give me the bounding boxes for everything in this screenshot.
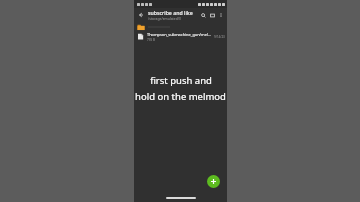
button[interactable]	[134, 22, 227, 31]
staticText: 735 B	[147, 38, 155, 42]
staticText: hold on the melmod	[135, 90, 226, 103]
button[interactable]: Thompson_submachine_gun/melmod.txt	[134, 31, 227, 42]
staticText: /storage/emulated/0	[148, 16, 182, 21]
button[interactable]: Change view	[208, 11, 217, 20]
button[interactable]: Search	[199, 11, 208, 20]
staticText: subscribe and like	[148, 9, 193, 16]
button[interactable]: More options	[217, 11, 225, 19]
staticText: Thompson_submachine_gun/melmod.txt	[147, 32, 214, 37]
button[interactable]: Back	[136, 10, 146, 20]
staticText: 9/14/23	[214, 35, 225, 39]
staticText: first push and	[150, 74, 212, 87]
button[interactable]: Add	[207, 175, 220, 188]
